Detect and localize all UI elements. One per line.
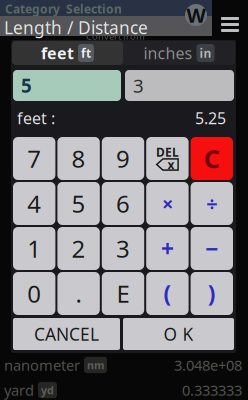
- staticText: 0.333333: [182, 380, 242, 400]
- staticText: Convert from: [86, 30, 145, 42]
- staticText: Length / Distance: [4, 16, 148, 39]
- button[interactable]: C: [191, 137, 233, 180]
- button[interactable]: .: [57, 272, 100, 315]
- staticText: W: [186, 2, 205, 28]
- staticText: feet :: [17, 107, 55, 129]
- button[interactable]: Delete: [146, 137, 189, 180]
- staticText: −: [205, 233, 218, 263]
- button[interactable]: 3: [125, 70, 234, 101]
- staticText: 3.048e+08: [174, 355, 242, 375]
- button[interactable]: Menu: [221, 17, 239, 32]
- staticText: 7: [27, 143, 41, 174]
- button[interactable]: feet: [12, 41, 123, 65]
- staticText: 3: [133, 73, 144, 98]
- button[interactable]: 9: [102, 137, 144, 180]
- button[interactable]: −: [191, 227, 233, 270]
- staticText: 5.25: [195, 107, 226, 129]
- button[interactable]: 7: [13, 137, 55, 180]
- button[interactable]: 5: [13, 70, 121, 101]
- staticText: 5: [21, 73, 32, 98]
- button[interactable]: CANCEL: [13, 318, 120, 350]
- staticText: 1: [27, 233, 41, 264]
- button[interactable]: 2: [57, 227, 100, 270]
- staticText: yard: [4, 380, 34, 400]
- staticText: ft: [81, 45, 91, 61]
- button[interactable]: 0: [13, 272, 55, 315]
- button[interactable]: E: [102, 272, 144, 315]
- button[interactable]: 1: [13, 227, 55, 270]
- staticText: 5: [72, 188, 86, 219]
- staticText: yd: [41, 383, 54, 397]
- button[interactable]: inches: [123, 41, 235, 65]
- staticText: 9: [116, 143, 130, 174]
- button[interactable]: +: [146, 227, 189, 270]
- staticText: x: [167, 156, 174, 172]
- staticText: 2: [72, 233, 86, 264]
- staticText: 0: [27, 278, 41, 309]
- button[interactable]: 6: [102, 182, 144, 225]
- staticText: in: [199, 45, 211, 61]
- staticText: +: [161, 233, 174, 263]
- button[interactable]: 4: [13, 182, 55, 225]
- button[interactable]: (: [146, 272, 189, 315]
- staticText: ): [208, 278, 216, 308]
- staticText: ÷: [206, 190, 217, 217]
- staticText: DEL: [156, 144, 179, 160]
- button[interactable]: 8: [57, 137, 100, 180]
- staticText: (: [163, 278, 171, 308]
- button[interactable]: O K: [123, 318, 234, 350]
- staticText: nanometer: [4, 355, 80, 375]
- staticText: feet: [41, 42, 74, 64]
- staticText: 4: [27, 188, 41, 219]
- staticText: C: [204, 142, 220, 175]
- button[interactable]: 5: [57, 182, 100, 225]
- staticText: nm: [87, 358, 104, 372]
- staticText: CANCEL: [34, 322, 99, 345]
- staticText: .: [76, 278, 82, 309]
- button[interactable]: Wikipedia: [185, 4, 207, 26]
- staticText: 3: [116, 233, 130, 264]
- staticText: 6: [116, 188, 130, 219]
- button[interactable]: ): [191, 272, 233, 315]
- staticText: 8: [72, 143, 86, 174]
- staticText: Category Selection: [5, 1, 122, 17]
- staticText: ×: [162, 190, 173, 217]
- staticText: O K: [163, 322, 193, 345]
- button[interactable]: ÷: [191, 182, 233, 225]
- staticText: inches: [143, 42, 192, 64]
- button[interactable]: 3: [102, 227, 144, 270]
- staticText: E: [116, 278, 129, 309]
- button[interactable]: ×: [146, 182, 189, 225]
